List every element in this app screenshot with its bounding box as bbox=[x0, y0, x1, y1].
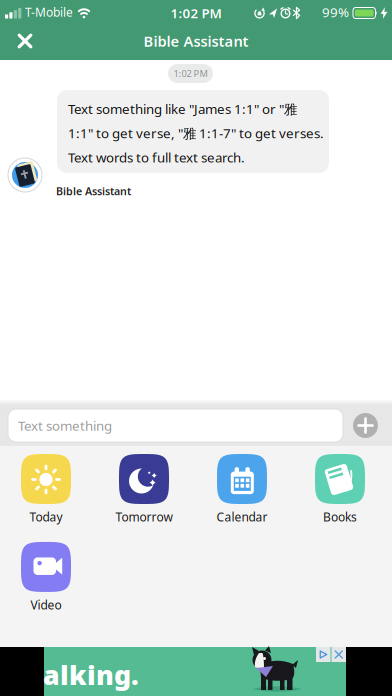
button[interactable]: Today bbox=[21, 454, 71, 525]
button[interactable]: Advertisement bbox=[0, 647, 392, 696]
staticText: T-Mobile bbox=[25, 4, 73, 20]
staticText: 1:1" to get verse, "雅 1:1-7" to get vers… bbox=[68, 124, 324, 142]
staticText: Books bbox=[323, 509, 357, 525]
staticText: 1:02 PM bbox=[173, 67, 207, 80]
staticText: Calendar bbox=[216, 509, 267, 525]
button[interactable]: Tomorrow bbox=[119, 454, 169, 525]
button[interactable]: Ad choices bbox=[316, 647, 330, 662]
staticText: Bible Assistant bbox=[143, 31, 248, 51]
button[interactable]: Close bbox=[0, 22, 42, 59]
button[interactable]: Books bbox=[315, 454, 365, 525]
staticText: Bible Assistant bbox=[56, 184, 131, 198]
staticText: Text something like "James 1:1" or "雅 bbox=[68, 100, 297, 118]
button[interactable]: Text something bbox=[8, 409, 343, 442]
staticText: Text something bbox=[18, 417, 112, 434]
button[interactable]: Video bbox=[21, 542, 71, 613]
staticText: alking. bbox=[43, 657, 139, 692]
button[interactable]: Close ad bbox=[331, 647, 346, 662]
staticText: Video bbox=[30, 597, 61, 613]
staticText: 99% bbox=[322, 3, 349, 21]
button[interactable]: Add bbox=[353, 413, 378, 438]
staticText: Today bbox=[29, 509, 62, 525]
staticText: 1:02 PM bbox=[170, 4, 221, 22]
staticText: Text words to full text search. bbox=[68, 148, 245, 166]
button[interactable]: Calendar bbox=[217, 454, 267, 525]
staticText: Tomorrow bbox=[115, 509, 172, 525]
